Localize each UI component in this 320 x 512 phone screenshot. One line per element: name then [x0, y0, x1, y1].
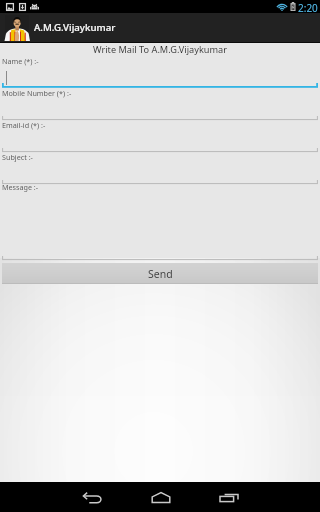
staticText: Email-id (*) :- — [2, 120, 46, 130]
button[interactable] — [0, 83, 320, 88]
button[interactable]: Send — [2, 263, 318, 284]
button[interactable] — [0, 116, 320, 121]
staticText: Message :- — [2, 182, 39, 192]
button[interactable] — [0, 148, 320, 153]
button[interactable]: Recent apps — [194, 482, 263, 512]
staticText: 2:20 — [298, 1, 318, 14]
button[interactable]: Back — [58, 482, 127, 512]
button[interactable] — [0, 256, 320, 261]
button[interactable]: Home — [126, 482, 195, 512]
staticText: Name (*) :- — [2, 56, 39, 66]
staticText: Send — [148, 267, 173, 281]
staticText: A.M.G.Vijaykumar — [34, 21, 116, 34]
staticText: Mobile Number (*) :- — [2, 88, 72, 98]
staticText: Write Mail To A.M.G.Vijaykumar — [93, 43, 228, 56]
staticText: Subject :- — [2, 152, 33, 162]
button[interactable] — [0, 180, 320, 185]
